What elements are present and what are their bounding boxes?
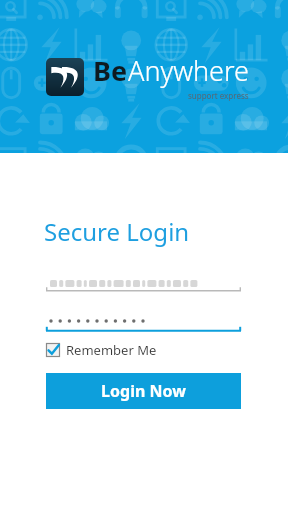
button[interactable]: Login Now bbox=[46, 373, 241, 409]
staticText: Remember Me bbox=[66, 341, 157, 359]
staticText: Secure Login bbox=[44, 215, 190, 248]
staticText: Anywhere bbox=[128, 52, 249, 89]
staticText: support express bbox=[188, 90, 249, 101]
button[interactable]: Remember Me bbox=[46, 339, 157, 361]
staticText: Login Now bbox=[101, 380, 186, 402]
button[interactable] bbox=[46, 266, 241, 292]
button[interactable] bbox=[46, 308, 241, 332]
staticText: Be bbox=[93, 52, 128, 89]
